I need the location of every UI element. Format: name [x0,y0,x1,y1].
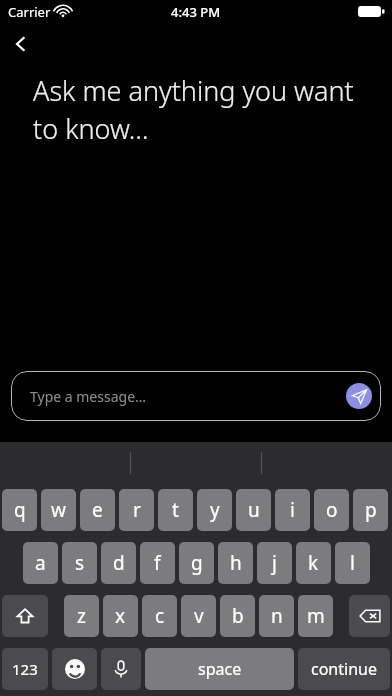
button[interactable]: c [142,595,177,637]
staticText: space [198,658,242,680]
staticText: continue [311,658,377,680]
staticText: e [92,497,103,523]
staticText: y [210,497,220,523]
staticText: p [365,497,377,523]
staticText: j [272,550,277,576]
button[interactable]: n [259,595,294,637]
button[interactable]: v [181,595,216,637]
button[interactable]: m [298,595,333,637]
staticText: Ask me anything you want to know… [33,72,365,147]
staticText: r [133,497,141,523]
staticText: l [350,550,355,576]
button[interactable]: t [158,489,193,531]
button[interactable]: h [218,542,253,584]
staticText: h [230,550,242,576]
button[interactable]: s [62,542,97,584]
button[interactable]: j [257,542,292,584]
staticText: z [77,603,86,629]
button[interactable]: k [296,542,331,584]
button[interactable]: Shift [2,595,48,637]
button[interactable]: Back [2,24,42,64]
staticText: b [232,603,244,629]
staticText: Type a message… [30,387,147,406]
button[interactable]: e [80,489,115,531]
button[interactable]: g [179,542,214,584]
staticText: t [172,497,179,523]
staticText: m [307,603,325,629]
button[interactable]: Type a message… [11,371,381,421]
staticText: g [191,550,203,576]
staticText: f [154,550,161,576]
button[interactable]: Backspace [349,595,390,637]
button[interactable]: o [314,489,349,531]
staticText: 123 [12,659,38,679]
button[interactable]: u [236,489,271,531]
staticText: d [113,550,125,576]
staticText: x [115,603,126,629]
staticText: s [75,550,85,576]
staticText: n [271,603,283,629]
button[interactable]: space [145,648,294,690]
staticText: k [308,550,319,576]
button[interactable]: z [64,595,99,637]
button[interactable]: w [41,489,76,531]
staticText: c [155,603,165,629]
button[interactable]: q [2,489,37,531]
button[interactable]: Dictate [101,648,141,690]
button[interactable]: a [23,542,58,584]
button[interactable]: continue [298,648,390,690]
button[interactable]: 123 [2,648,48,690]
button[interactable]: Send [346,383,372,409]
staticText: q [14,497,26,523]
staticText: a [35,550,46,576]
staticText: 4:43 PM [171,3,221,21]
button[interactable]: i [275,489,310,531]
staticText: i [290,497,295,523]
staticText: u [248,497,260,523]
staticText: o [326,497,338,523]
button[interactable]: p [353,489,388,531]
button[interactable]: x [103,595,138,637]
button[interactable]: Emoji [52,648,97,690]
staticText: v [194,603,204,629]
button[interactable]: b [220,595,255,637]
button[interactable]: r [119,489,154,531]
staticText: w [51,497,66,523]
staticText: Carrier [8,3,51,21]
button[interactable]: y [197,489,232,531]
button[interactable]: f [140,542,175,584]
button[interactable]: d [101,542,136,584]
button[interactable]: l [335,542,370,584]
